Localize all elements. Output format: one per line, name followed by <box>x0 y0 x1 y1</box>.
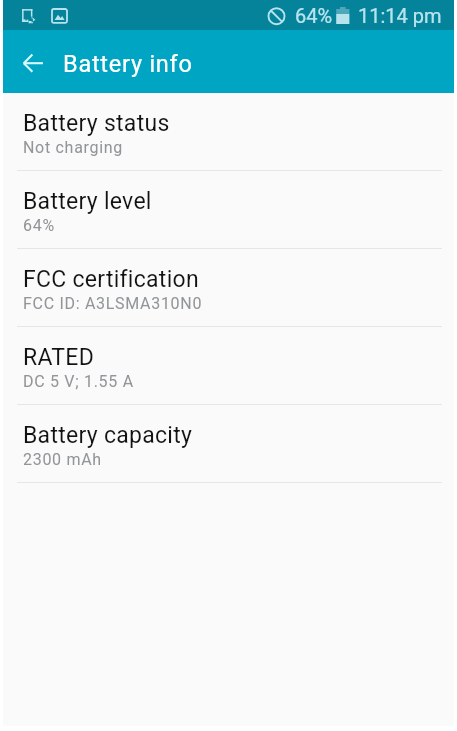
staticText: 2300 mAh <box>23 450 102 469</box>
staticText: 64% <box>23 216 55 235</box>
button[interactable]: RATED <box>3 327 454 405</box>
staticText: FCC ID: A3LSMA310N0 <box>23 294 203 313</box>
staticText: RATED <box>23 344 95 371</box>
button[interactable]: Navigate up <box>12 38 60 86</box>
staticText: 64% <box>295 4 333 27</box>
button[interactable]: Battery level <box>3 171 454 249</box>
staticText: Battery status <box>23 110 170 137</box>
staticText: Battery level <box>23 188 152 215</box>
button[interactable]: FCC certification <box>3 249 454 327</box>
staticText: DC 5 V; 1.55 A <box>23 372 134 391</box>
staticText: 11:14 pm <box>358 4 442 27</box>
staticText: FCC certification <box>23 266 199 293</box>
button[interactable]: Battery status <box>3 93 454 171</box>
button[interactable]: Battery capacity <box>3 405 454 483</box>
staticText: Battery capacity <box>23 422 193 449</box>
staticText: Battery info <box>63 50 193 78</box>
staticText: Not charging <box>23 138 124 157</box>
